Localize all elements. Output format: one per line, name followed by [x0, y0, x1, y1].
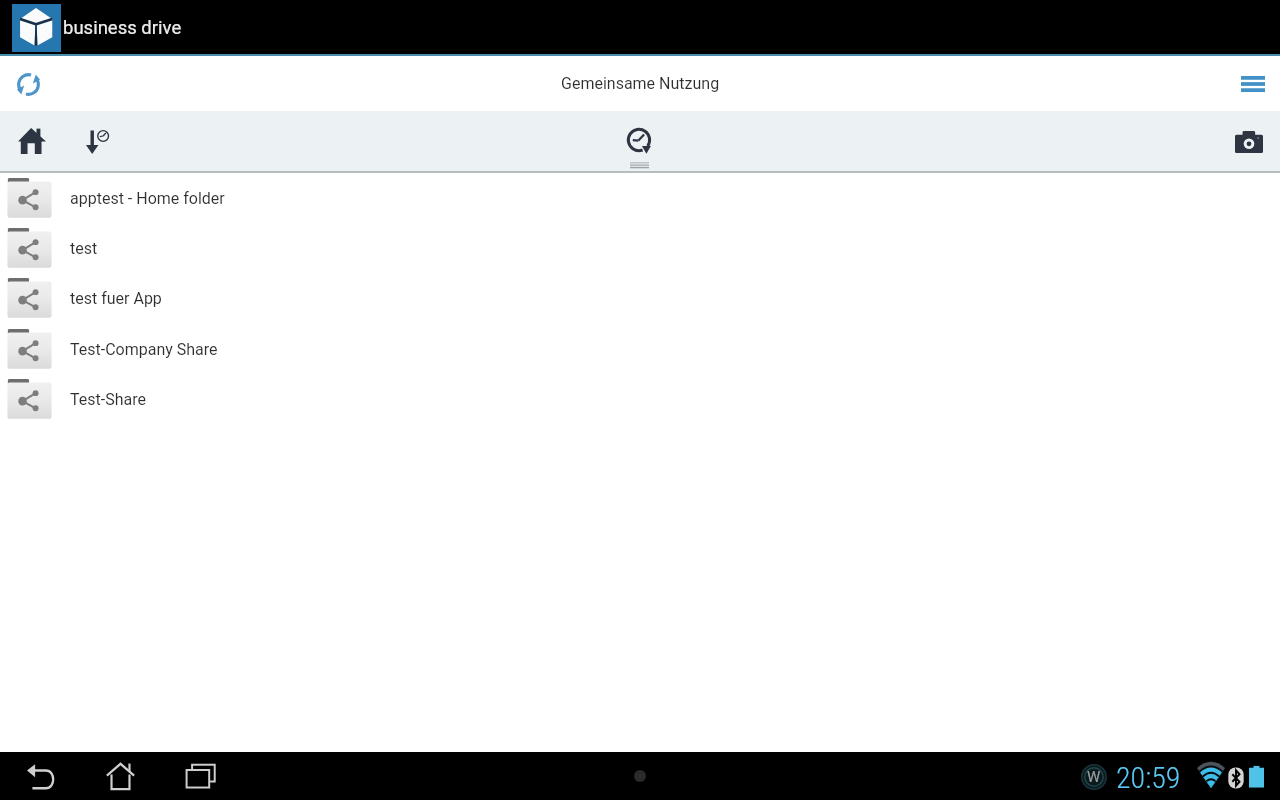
button[interactable]: Shared — [614, 111, 666, 171]
button[interactable]: test — [0, 223, 1280, 273]
staticText: 20:59 — [1116, 760, 1181, 795]
button[interactable]: Test-Company Share — [0, 324, 1280, 374]
button[interactable]: apptest - Home folder — [0, 173, 1280, 223]
button[interactable]: Downloads — [74, 118, 121, 165]
button[interactable]: Recents — [172, 752, 229, 800]
staticText: test — [70, 239, 98, 258]
button[interactable]: Home — [8, 118, 55, 165]
button[interactable]: Menu — [1232, 63, 1274, 105]
button[interactable]: business drive — [12, 4, 61, 52]
staticText: Gemeinsame Nutzung — [561, 74, 720, 93]
button[interactable]: Refresh — [7, 63, 49, 105]
staticText: Test-Share — [70, 390, 146, 409]
button[interactable]: test fuer App — [0, 273, 1280, 323]
button[interactable]: Home — [92, 752, 148, 800]
staticText: business drive — [63, 17, 182, 39]
button[interactable]: Camera — [1225, 118, 1272, 165]
button[interactable]: Back — [13, 752, 68, 800]
button[interactable]: Test-Share — [0, 374, 1280, 424]
staticText: W — [1087, 768, 1101, 786]
staticText: apptest - Home folder — [70, 189, 225, 208]
staticText: Test-Company Share — [70, 340, 218, 359]
staticText: test fuer App — [70, 289, 162, 308]
